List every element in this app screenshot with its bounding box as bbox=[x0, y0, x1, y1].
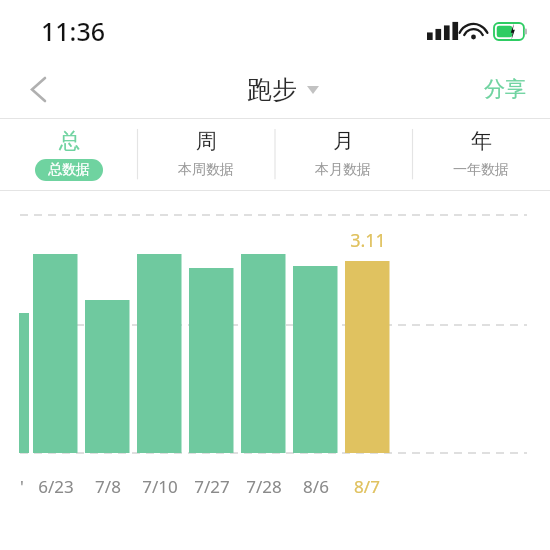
button[interactable]: 总 bbox=[0, 119, 137, 190]
staticText: 周 bbox=[196, 128, 217, 154]
staticText: 7/8 bbox=[95, 475, 121, 498]
staticText: 总 bbox=[59, 128, 80, 154]
staticText: 一年数据 bbox=[453, 161, 509, 179]
staticText: 跑步 bbox=[247, 74, 297, 105]
staticText: 本月数据 bbox=[315, 161, 371, 179]
staticText: 7/10 bbox=[142, 475, 178, 498]
staticText: 本周数据 bbox=[178, 161, 234, 179]
staticText: 8/6 bbox=[303, 475, 329, 498]
staticText: 分享 bbox=[484, 76, 526, 102]
staticText: 6/23 bbox=[38, 475, 74, 498]
staticText: 月 bbox=[333, 128, 354, 154]
staticText: 总数据 bbox=[48, 161, 90, 179]
staticText: 7/27 bbox=[194, 475, 230, 498]
staticText: 8/7 bbox=[354, 475, 380, 498]
button[interactable]: 分享 bbox=[474, 70, 536, 108]
button[interactable]: 跑步 bbox=[247, 74, 319, 105]
staticText: 7/28 bbox=[246, 475, 282, 498]
staticText: 3.11 bbox=[350, 228, 386, 253]
staticText: ' bbox=[20, 475, 24, 498]
button[interactable]: Back bbox=[14, 65, 62, 113]
button[interactable]: 月 bbox=[274, 119, 412, 190]
button[interactable]: 年 bbox=[412, 119, 550, 190]
staticText: 年 bbox=[471, 128, 492, 154]
staticText: 11:36 bbox=[41, 14, 106, 48]
button[interactable]: 周 bbox=[137, 119, 274, 190]
